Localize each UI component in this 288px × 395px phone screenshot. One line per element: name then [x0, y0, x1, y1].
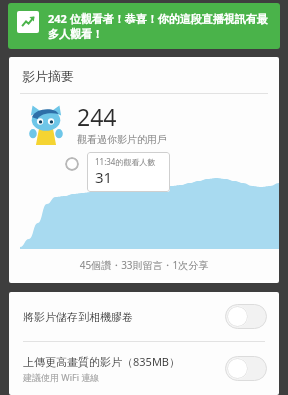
staticText: 45個讚・33則留言・1次分享 [9, 258, 279, 272]
staticText: 觀看過你影片的用戶 [77, 133, 167, 146]
button[interactable]: 將影片儲存到相機膠卷 [9, 292, 279, 341]
staticText: 上傳更高畫質的影片（835MB） [23, 354, 181, 369]
staticText: 244 [77, 101, 117, 132]
staticText: 242 位觀看者！恭喜！你的這段直播視訊有最多人觀看！ [48, 11, 271, 41]
button[interactable]: 242 位觀看者！恭喜！你的這段直播視訊有最多人觀看！ [8, 3, 280, 49]
staticText: 影片摘要 [22, 68, 74, 84]
staticText: 11:34的觀看人數 [95, 156, 156, 167]
button[interactable]: Toggle [225, 304, 267, 329]
button[interactable]: Toggle [225, 356, 267, 381]
staticText: 31 [95, 167, 113, 187]
button[interactable]: 上傳更高畫質的影片（835MB） [9, 342, 279, 395]
staticText: 建議使用 WiFi 連線 [23, 371, 100, 383]
staticText: 將影片儲存到相機膠卷 [23, 310, 133, 324]
